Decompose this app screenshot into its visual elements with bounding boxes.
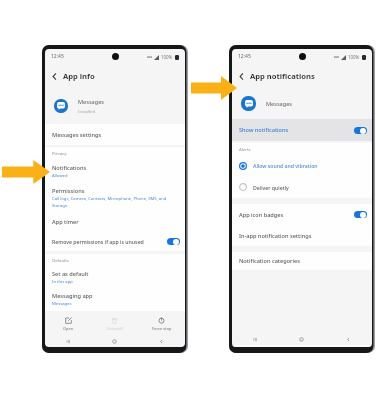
- button[interactable]: In-app notification settings: [232, 225, 372, 246]
- staticText: Messaging app: [52, 292, 93, 300]
- staticText: Privacy: [52, 150, 67, 156]
- staticText: Installed: [78, 109, 95, 115]
- button[interactable]: Toggle: [167, 238, 180, 245]
- staticText: Notifications: [52, 164, 87, 172]
- staticText: In-app notification settings: [239, 232, 312, 240]
- button[interactable]: Open: [45, 311, 91, 336]
- staticText: App timer: [52, 218, 79, 226]
- staticText: Deliver quietly: [253, 184, 289, 191]
- button[interactable]: Home: [91, 336, 138, 347]
- staticText: Set as default: [52, 270, 89, 278]
- staticText: Messages settings: [52, 131, 102, 139]
- staticText: Remove permissions if app is unused: [52, 238, 144, 245]
- staticText: Uninstall: [106, 326, 123, 331]
- button[interactable]: Set as default: [45, 266, 185, 288]
- button[interactable]: App icon badges: [232, 204, 372, 225]
- button[interactable]: Allow sound and vibration: [232, 155, 372, 176]
- button[interactable]: Home: [278, 333, 325, 345]
- staticText: Defaults: [52, 257, 69, 263]
- button[interactable]: Toggle: [354, 211, 367, 218]
- button[interactable]: Uninstall: [91, 311, 138, 336]
- button[interactable]: Recent apps: [45, 336, 91, 347]
- staticText: Messages: [52, 301, 72, 307]
- button[interactable]: Messaging app: [45, 288, 185, 311]
- button[interactable]: Show notifications: [232, 119, 372, 141]
- staticText: App notifications: [250, 71, 315, 81]
- staticText: 100%: [161, 54, 173, 60]
- button[interactable]: Deliver quietly: [232, 176, 372, 198]
- button[interactable]: Back: [235, 70, 247, 82]
- staticText: Open: [63, 326, 74, 331]
- button[interactable]: Messages settings: [45, 124, 185, 145]
- button[interactable]: Notification categories: [232, 252, 372, 270]
- staticText: App icon badges: [239, 211, 284, 219]
- staticText: Call logs, Camera, Contacts, Microphone,…: [52, 196, 167, 208]
- staticText: 100%: [348, 54, 360, 60]
- staticText: 12:45: [51, 53, 64, 60]
- staticText: Allow sound and vibration: [253, 162, 318, 169]
- staticText: Show notifications: [239, 126, 289, 134]
- staticText: Force stop: [152, 326, 172, 331]
- button[interactable]: Back: [48, 70, 60, 82]
- button[interactable]: Remove permissions if app is unused: [45, 232, 185, 251]
- button[interactable]: Back: [325, 333, 372, 345]
- button[interactable]: App timer: [45, 211, 185, 232]
- staticText: In this app: [52, 279, 73, 285]
- button[interactable]: Toggle: [354, 127, 367, 134]
- staticText: Permissions: [52, 187, 85, 195]
- button[interactable]: Force stop: [138, 311, 185, 336]
- button[interactable]: Notifications: [45, 159, 185, 183]
- staticText: Allowed: [52, 173, 68, 179]
- staticText: 12:45: [238, 53, 251, 60]
- staticText: App info: [63, 71, 95, 81]
- staticText: Notification categories: [239, 257, 300, 265]
- button[interactable]: Permissions: [45, 183, 185, 211]
- staticText: Messages: [78, 98, 104, 106]
- button[interactable]: Back: [138, 336, 185, 347]
- staticText: Alerts: [239, 146, 251, 152]
- button[interactable]: Recent apps: [232, 333, 278, 345]
- staticText: Messages: [266, 100, 292, 108]
